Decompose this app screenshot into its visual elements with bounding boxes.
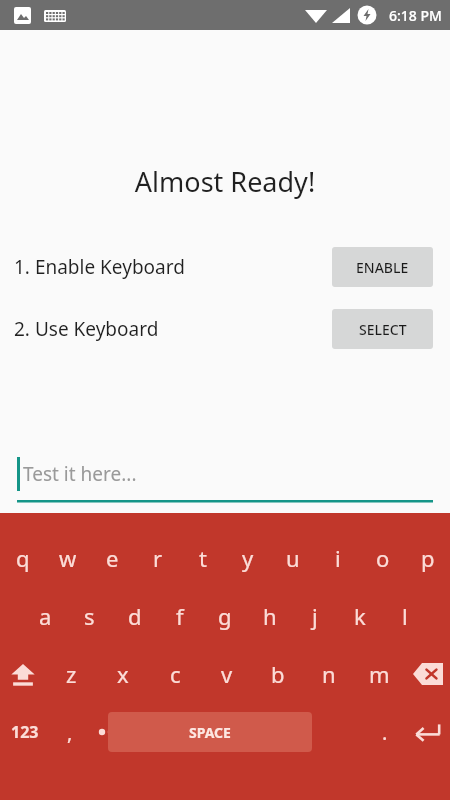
staticText: w: [59, 543, 77, 573]
button[interactable]: Backspace: [405, 645, 450, 703]
button[interactable]: d: [112, 587, 157, 645]
staticText: z: [66, 659, 77, 689]
button[interactable]: t: [180, 529, 225, 587]
button[interactable]: x: [97, 645, 149, 703]
staticText: SELECT: [359, 320, 407, 339]
staticText: i: [335, 543, 341, 573]
button[interactable]: r: [135, 529, 180, 587]
button[interactable]: b: [252, 645, 303, 703]
button[interactable]: g: [202, 587, 247, 645]
button[interactable]: e: [90, 529, 135, 587]
staticText: x: [117, 659, 129, 689]
button[interactable]: c: [149, 645, 201, 703]
staticText: u: [286, 543, 300, 573]
staticText: 2. Use Keyboard: [14, 316, 159, 342]
button[interactable]: f: [157, 587, 202, 645]
button[interactable]: Test it here...: [17, 446, 433, 502]
button[interactable]: SELECT: [332, 309, 433, 349]
staticText: f: [176, 601, 184, 631]
button[interactable]: v: [201, 645, 252, 703]
staticText: g: [218, 601, 232, 631]
button[interactable]: l: [382, 587, 427, 645]
staticText: v: [221, 659, 233, 689]
staticText: 123: [11, 721, 39, 743]
staticText: 1. Enable Keyboard: [14, 254, 185, 280]
staticText: o: [376, 543, 390, 573]
button[interactable]: More: [90, 703, 132, 761]
staticText: q: [16, 543, 30, 573]
button[interactable]: z: [45, 645, 97, 703]
staticText: .: [382, 719, 388, 746]
staticText: b: [271, 659, 285, 689]
button[interactable]: y: [225, 529, 270, 587]
staticText: ,: [67, 719, 73, 746]
staticText: l: [402, 601, 408, 631]
button[interactable]: ,: [50, 703, 90, 761]
button[interactable]: i: [315, 529, 360, 587]
staticText: y: [242, 543, 254, 573]
button[interactable]: Shift: [0, 645, 45, 703]
button[interactable]: u: [270, 529, 315, 587]
staticText: n: [322, 659, 336, 689]
staticText: h: [263, 601, 277, 631]
button[interactable]: w: [45, 529, 90, 587]
button[interactable]: o: [360, 529, 405, 587]
button[interactable]: Enter: [405, 703, 450, 761]
button[interactable]: n: [303, 645, 354, 703]
staticText: Almost Ready!: [0, 163, 450, 200]
staticText: a: [39, 601, 52, 631]
button[interactable]: ENABLE: [332, 247, 433, 287]
staticText: t: [199, 543, 207, 573]
staticText: m: [369, 659, 390, 689]
button[interactable]: j: [292, 587, 337, 645]
button[interactable]: s: [67, 587, 112, 645]
button[interactable]: h: [247, 587, 292, 645]
button[interactable]: k: [337, 587, 382, 645]
staticText: e: [106, 543, 119, 573]
button[interactable]: m: [354, 645, 405, 703]
button[interactable]: SPACE: [108, 712, 312, 752]
staticText: 6:18 PM: [389, 6, 442, 25]
staticText: SPACE: [189, 723, 231, 742]
staticText: r: [153, 543, 163, 573]
button[interactable]: 123: [0, 703, 50, 761]
button[interactable]: q: [0, 529, 45, 587]
staticText: Test it here...: [23, 461, 137, 487]
staticText: p: [421, 543, 435, 573]
staticText: s: [84, 601, 95, 631]
staticText: c: [170, 659, 181, 689]
button[interactable]: .: [365, 703, 405, 761]
staticText: k: [354, 601, 366, 631]
button[interactable]: a: [23, 587, 67, 645]
staticText: ENABLE: [356, 258, 409, 277]
staticText: d: [128, 601, 142, 631]
button[interactable]: p: [405, 529, 450, 587]
staticText: j: [312, 601, 318, 631]
